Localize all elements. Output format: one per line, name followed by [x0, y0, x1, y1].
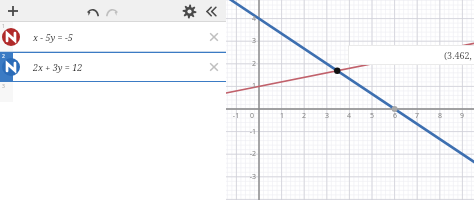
staticText: 3	[319, 111, 335, 121]
staticText: 5	[364, 111, 380, 121]
staticText: -3	[242, 172, 256, 182]
button[interactable]: Settings	[182, 4, 197, 19]
staticText: 2	[242, 59, 256, 69]
staticText: 2	[296, 111, 312, 121]
staticText: 3	[242, 36, 256, 46]
staticText: -2	[242, 149, 256, 159]
staticText: 1	[274, 111, 290, 121]
button[interactable]: (3.462, 1.692)	[348, 45, 474, 65]
button[interactable]: Toggle graph visibility	[2, 58, 20, 76]
staticText: 0	[250, 111, 255, 121]
button[interactable]: Toggle graph visibility	[2, 28, 20, 46]
staticText: -1	[242, 127, 256, 137]
button[interactable]: Collapse panel	[203, 3, 220, 20]
button[interactable]: Redo	[104, 4, 120, 20]
staticText: 1	[242, 81, 256, 91]
staticText: x − 5y = −5	[33, 31, 73, 43]
staticText: 3	[2, 83, 5, 90]
staticText: 8	[432, 111, 448, 121]
button[interactable]: Delete expression	[206, 29, 222, 45]
staticText: 6	[387, 111, 403, 121]
button[interactable]: Add expression	[5, 3, 21, 19]
staticText: -1	[228, 111, 244, 121]
staticText: 4	[341, 111, 357, 121]
button[interactable]: 1	[0, 22, 226, 52]
button[interactable]: 2	[0, 52, 226, 82]
staticText: 9	[454, 111, 470, 121]
staticText: 4	[242, 14, 256, 24]
staticText: 1	[2, 23, 5, 30]
staticText: (3.462, 1.692)	[444, 49, 474, 61]
staticText: 7	[409, 111, 425, 121]
button[interactable]: Delete expression	[206, 59, 222, 75]
staticText: 2	[2, 53, 5, 60]
staticText: 2x + 3y = 12	[33, 61, 83, 73]
button[interactable]: Graph	[226, 0, 474, 200]
button[interactable]: Undo	[85, 4, 101, 20]
